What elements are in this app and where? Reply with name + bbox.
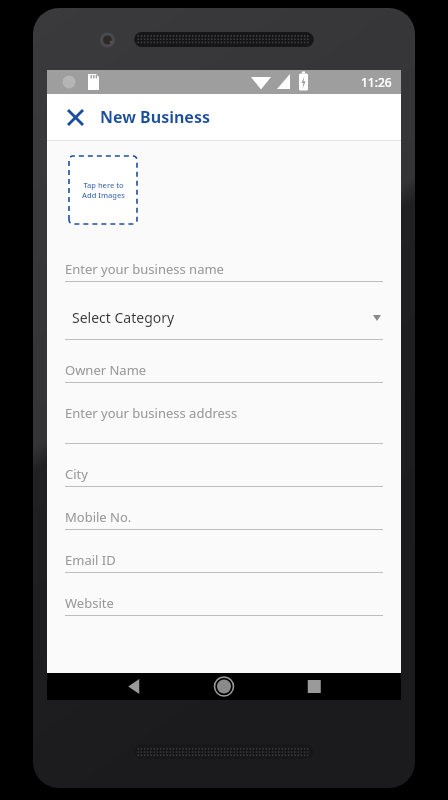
staticText: City (65, 465, 88, 483)
staticText: Enter your business address (65, 404, 238, 422)
button[interactable]: Recents (284, 673, 401, 700)
staticText: Mobile No. (65, 508, 132, 526)
button[interactable]: Enter your business address (65, 383, 383, 444)
staticText: New Business (100, 106, 210, 128)
staticText: Website (65, 594, 114, 612)
staticText: 11:26 (361, 74, 392, 90)
button[interactable]: Mobile No. (65, 487, 383, 530)
button[interactable]: Owner Name (65, 340, 383, 383)
button[interactable]: Close (57, 99, 93, 135)
staticText: Tap here to Add Images (82, 180, 125, 200)
staticText: Owner Name (65, 361, 147, 379)
button[interactable]: Add images (69, 156, 137, 224)
button[interactable]: Back (47, 673, 164, 700)
button[interactable]: Enter your business name (65, 247, 383, 282)
button[interactable]: Email ID (65, 530, 383, 573)
staticText: Email ID (65, 551, 116, 569)
button[interactable]: Website (65, 573, 383, 616)
button[interactable]: Select Category (65, 282, 383, 340)
staticText: Enter your business name (65, 260, 224, 278)
staticText: Select Category (72, 308, 175, 327)
button[interactable]: City (65, 444, 383, 487)
button[interactable]: Home (166, 673, 283, 700)
